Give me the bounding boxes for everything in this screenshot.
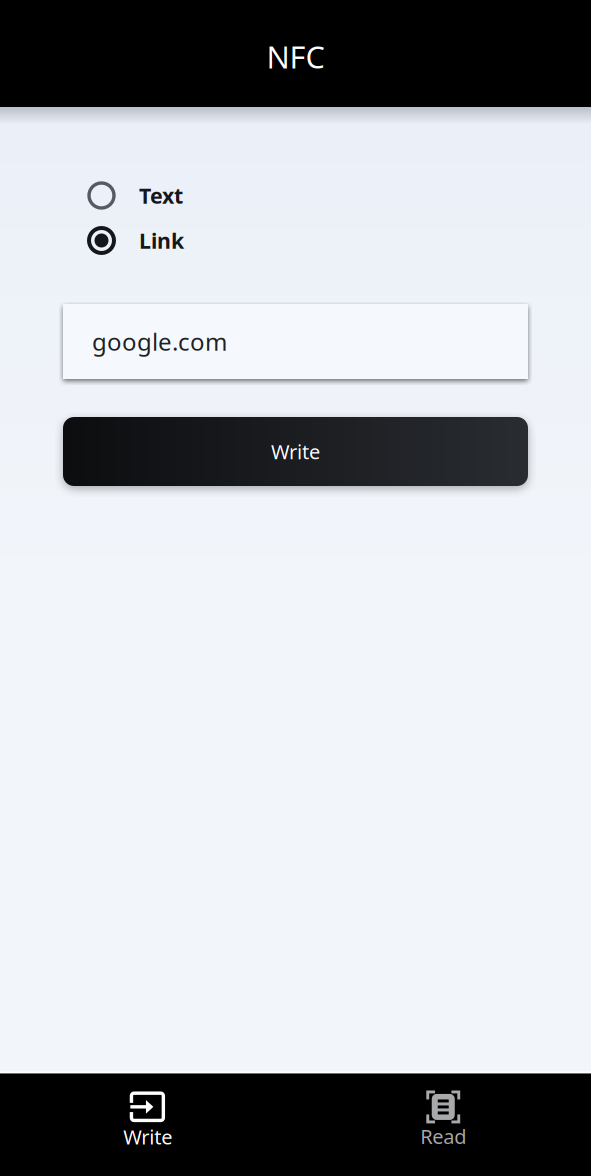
staticText: Read [420,1123,466,1149]
button[interactable]: Link [87,218,528,263]
staticText: NFC [266,36,324,77]
staticText: Link [139,226,184,255]
button[interactable]: Write [63,417,528,486]
button[interactable]: google.com [63,304,528,379]
staticText: Write [271,438,320,465]
button[interactable]: Write [0,1091,295,1150]
staticText: google.com [92,326,227,357]
button[interactable]: Text [87,173,528,218]
button[interactable]: Read [295,1092,591,1149]
staticText: Text [139,181,183,210]
staticText: Write [123,1123,172,1150]
